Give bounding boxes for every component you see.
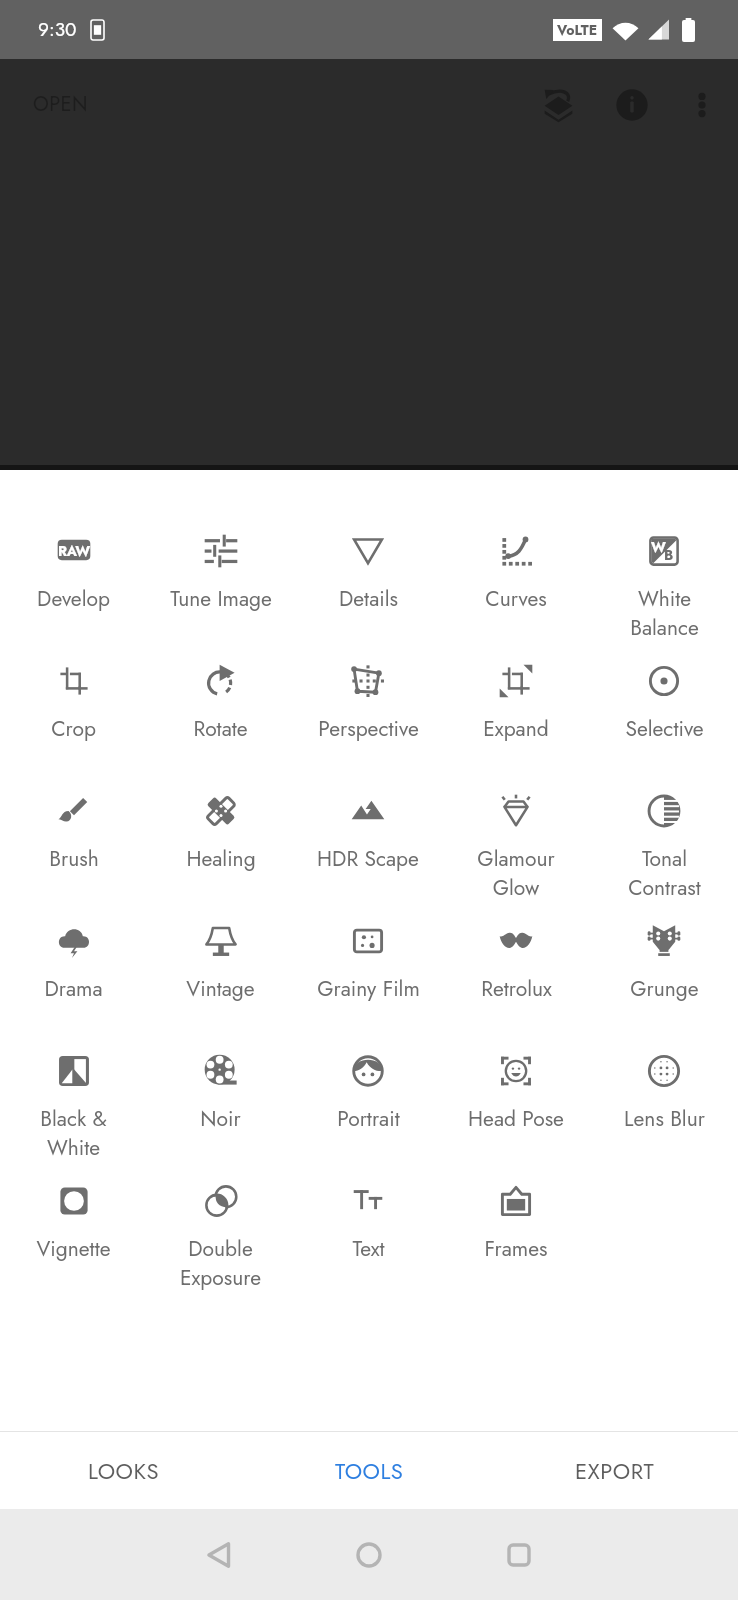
staticText: Lens Blur [624, 1104, 705, 1134]
staticText: RAW [58, 541, 90, 561]
staticText: Glamour Glow [477, 844, 555, 903]
button[interactable]: W [590, 534, 738, 643]
button[interactable]: HDR Scape [294, 794, 442, 874]
staticText: 9:30 [38, 16, 77, 43]
staticText: Curves [485, 584, 547, 614]
staticText: VoLTE [557, 20, 598, 40]
button[interactable]: Home [294, 1509, 444, 1600]
staticText: Healing [186, 844, 256, 874]
button[interactable]: Lens Blur [590, 1054, 738, 1134]
staticText: TOOLS [335, 1455, 404, 1487]
button[interactable]: Drama [0, 924, 147, 1004]
staticText: Drama [44, 974, 103, 1004]
staticText: Grunge [630, 974, 699, 1004]
staticText: Black & White [40, 1104, 107, 1163]
button[interactable]: Grunge [590, 924, 738, 1004]
staticText: White Balance [630, 584, 699, 643]
staticText: Vignette [36, 1234, 111, 1264]
staticText: Crop [51, 714, 96, 744]
staticText: Brush [49, 844, 99, 874]
button[interactable]: Retrolux [442, 924, 590, 1004]
staticText: Develop [37, 584, 110, 614]
staticText: EXPORT [575, 1455, 655, 1487]
button[interactable]: Vintage [147, 924, 294, 1004]
button[interactable]: Revert [519, 59, 598, 150]
button[interactable]: RAW [0, 534, 147, 614]
staticText: OPEN [33, 90, 88, 119]
button[interactable]: Curves [442, 534, 590, 614]
button[interactable]: Recents [444, 1509, 594, 1600]
button[interactable]: Vignette [0, 1184, 147, 1264]
button[interactable]: EXPORT [492, 1432, 738, 1509]
staticText: Frames [484, 1234, 548, 1264]
staticText: Rotate [193, 714, 248, 744]
button[interactable]: Brush [0, 794, 147, 874]
button[interactable]: Tune Image [147, 534, 294, 614]
button[interactable]: TOOLS [246, 1432, 492, 1509]
button[interactable]: Frames [442, 1184, 590, 1264]
staticText: Portrait [337, 1104, 400, 1134]
staticText: Retrolux [481, 974, 552, 1004]
button[interactable]: Healing [147, 794, 294, 874]
staticText: B [664, 545, 674, 565]
staticText: Head Pose [468, 1104, 564, 1134]
button[interactable]: Expand [442, 664, 590, 744]
button[interactable]: Selective [590, 664, 738, 744]
button[interactable]: Head Pose [442, 1054, 590, 1134]
staticText: Noir [200, 1104, 241, 1134]
button[interactable]: Perspective [294, 664, 442, 744]
button[interactable]: Glamour Glow [442, 794, 590, 903]
staticText: Perspective [318, 714, 419, 744]
staticText: Double Exposure [180, 1234, 261, 1293]
staticText: Expand [483, 714, 549, 744]
button[interactable]: Info [598, 59, 666, 150]
button[interactable]: Crop [0, 664, 147, 744]
button[interactable]: Rotate [147, 664, 294, 744]
staticText: Tune Image [170, 584, 272, 614]
staticText: W [651, 537, 666, 557]
staticText: Text [352, 1234, 385, 1264]
button[interactable]: Grainy Film [294, 924, 442, 1004]
staticText: Tonal Contrast [628, 844, 701, 903]
button[interactable]: Back [144, 1509, 294, 1600]
button[interactable]: Tonal Contrast [590, 794, 738, 903]
staticText: Selective [625, 714, 704, 744]
button[interactable]: Text [294, 1184, 442, 1264]
button[interactable]: Double Exposure [147, 1184, 294, 1293]
button[interactable]: LOOKS [0, 1432, 246, 1509]
button[interactable]: Details [294, 534, 442, 614]
staticText: Grainy Film [317, 974, 420, 1004]
staticText: Details [339, 584, 398, 614]
button[interactable]: Black & White [0, 1054, 147, 1163]
staticText: LOOKS [88, 1455, 159, 1487]
button[interactable]: Portrait [294, 1054, 442, 1134]
staticText: HDR Scape [317, 844, 419, 874]
staticText: Vintage [186, 974, 255, 1004]
button[interactable]: Noir [147, 1054, 294, 1134]
